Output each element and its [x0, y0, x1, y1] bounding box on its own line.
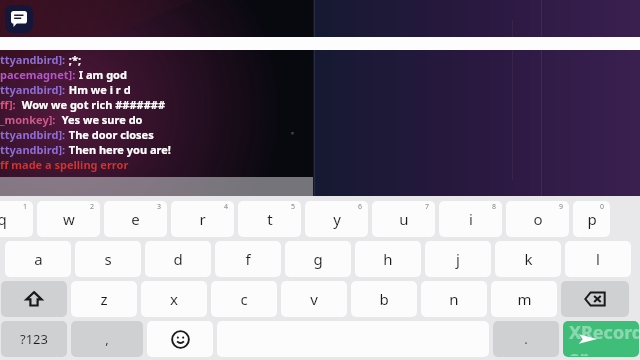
staticText: pacemagnet]: [0, 67, 76, 82]
staticText: 3 [157, 202, 162, 212]
staticText: s [104, 249, 112, 269]
staticText: h [383, 249, 393, 269]
staticText: f [245, 249, 251, 269]
staticText: o [533, 209, 543, 229]
button[interactable]: g [285, 241, 351, 277]
staticText: ff made a spelling error [0, 157, 129, 172]
button[interactable]: Chat [5, 5, 33, 33]
staticText: 1 [23, 202, 28, 212]
staticText: g [313, 249, 323, 269]
button[interactable]: e [104, 201, 167, 237]
button[interactable]: q [0, 201, 33, 237]
staticText: 6 [358, 202, 363, 212]
staticText: 8 [492, 202, 497, 212]
staticText: j [456, 249, 460, 269]
staticText: ttyandbird]: [0, 82, 66, 97]
button[interactable]: n [421, 281, 487, 317]
staticText: I am god [76, 67, 127, 82]
button[interactable]: u [372, 201, 435, 237]
button[interactable]: k [495, 241, 561, 277]
button[interactable]: t [238, 201, 301, 237]
staticText: l [596, 249, 600, 269]
button[interactable]: f [215, 241, 281, 277]
button[interactable]: z [71, 281, 137, 317]
button[interactable]: j [425, 241, 491, 277]
staticText: 5 [291, 202, 296, 212]
button[interactable]: i [439, 201, 502, 237]
button[interactable]: Send [563, 321, 639, 357]
staticText: 4 [224, 202, 229, 212]
button[interactable]: s [75, 241, 141, 277]
button[interactable]: a [5, 241, 71, 277]
button[interactable]: c [211, 281, 277, 317]
staticText: r [199, 209, 206, 229]
staticText: Wow we got rich ####### [16, 97, 166, 112]
button[interactable]: Backspace [561, 281, 629, 317]
staticText: x [170, 289, 178, 309]
staticText: 7 [425, 202, 430, 212]
staticText: i [469, 209, 473, 229]
staticText: Hm we i r d [66, 82, 131, 97]
button[interactable]: y [305, 201, 368, 237]
button[interactable]: r [171, 201, 234, 237]
staticText: The door closes [66, 127, 154, 142]
staticText: Yes we sure do [56, 112, 143, 127]
staticText: k [524, 249, 533, 269]
button[interactable]: Shift [1, 281, 67, 317]
button[interactable]: w [37, 201, 100, 237]
staticText: n [449, 289, 459, 309]
staticText: XRecorder [569, 321, 639, 356]
staticText: z [100, 289, 108, 309]
button[interactable]: x [141, 281, 207, 317]
staticText: m [517, 289, 532, 309]
staticText: . [524, 330, 528, 348]
button[interactable]: Emoji [147, 321, 213, 357]
staticText: b [379, 289, 389, 309]
staticText: e [131, 209, 140, 229]
button[interactable]: l [565, 241, 631, 277]
staticText: u [399, 209, 409, 229]
button[interactable]: d [145, 241, 211, 277]
button[interactable]: Symbols [1, 321, 67, 357]
staticText: ;*; [66, 52, 82, 67]
staticText: w [63, 209, 75, 229]
staticText: ttyandbird]: [0, 142, 66, 157]
staticText: y [333, 209, 341, 229]
button[interactable]: Comma [71, 321, 143, 357]
staticText: c [240, 289, 248, 309]
staticText: , [105, 330, 109, 348]
staticText: 9 [559, 202, 564, 212]
staticText: t [267, 209, 273, 229]
staticText: ttyandbird]: [0, 52, 66, 67]
staticText: 0 [600, 202, 605, 212]
button[interactable]: o [506, 201, 569, 237]
button[interactable]: h [355, 241, 421, 277]
staticText: _monkey]: [0, 112, 56, 127]
staticText: Then here you are! [66, 142, 171, 157]
button[interactable]: Period [493, 321, 559, 357]
button[interactable]: p [573, 201, 610, 237]
staticText: q [0, 209, 7, 229]
staticText: p [587, 209, 597, 229]
staticText: ff]: [0, 97, 16, 112]
button[interactable]: b [351, 281, 417, 317]
staticText: v [310, 289, 318, 309]
staticText: d [173, 249, 183, 269]
staticText: a [34, 249, 43, 269]
staticText: ttyandbird]: [0, 127, 66, 142]
staticText: 2 [90, 202, 95, 212]
button[interactable]: v [281, 281, 347, 317]
staticText: ?123 [20, 330, 48, 348]
button[interactable]: m [491, 281, 557, 317]
button[interactable]: Chat input [0, 177, 313, 196]
